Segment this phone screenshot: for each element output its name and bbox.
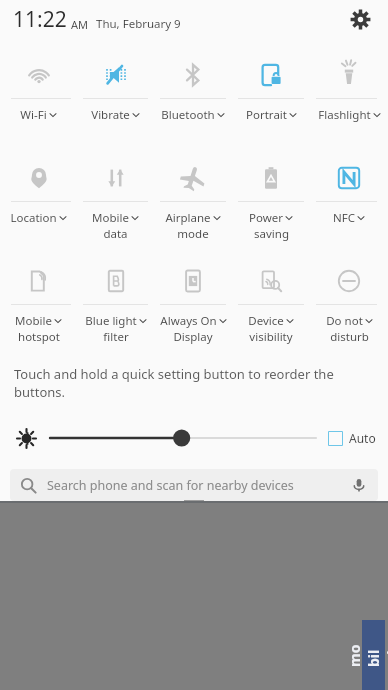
staticText: Thu, February 9 xyxy=(96,16,181,32)
staticText: Bluetooth xyxy=(161,107,215,123)
staticText: filter xyxy=(103,329,129,345)
staticText: Auto xyxy=(349,430,376,446)
staticText: Mobile xyxy=(15,313,52,329)
staticText: Blue light xyxy=(85,313,137,329)
staticText: Portrait xyxy=(246,107,287,123)
button[interactable]: Blue light xyxy=(77,250,154,353)
staticText: Mobile xyxy=(92,210,129,226)
button[interactable]: Power xyxy=(232,147,310,250)
staticText: Vibrate xyxy=(91,107,130,123)
button[interactable]: Mobile xyxy=(77,147,154,250)
other: Voice search xyxy=(350,476,368,494)
staticText: Location xyxy=(10,210,57,226)
button[interactable]: Location xyxy=(0,147,77,250)
button[interactable]: NFC xyxy=(310,147,388,250)
staticText: saving xyxy=(254,226,289,242)
staticText: Touch and hold a quick setting button to… xyxy=(14,365,388,401)
button[interactable]: Bluetooth xyxy=(154,44,232,147)
button[interactable] xyxy=(50,425,316,451)
staticText: mode xyxy=(177,226,209,242)
staticText: 11:22 xyxy=(13,5,67,34)
button[interactable]: Wi-Fi xyxy=(0,44,77,147)
staticText: data xyxy=(103,226,128,242)
staticText: Wi-Fi xyxy=(20,107,47,123)
staticText: Flashlight xyxy=(318,107,371,123)
staticText: Search phone and scan for nearby devices xyxy=(47,477,342,494)
button[interactable]: Flashlight xyxy=(310,44,388,147)
staticText: Always On xyxy=(160,313,217,329)
staticText: NFC xyxy=(333,210,355,226)
button[interactable]: Do not xyxy=(310,250,388,353)
button[interactable]: Vibrate xyxy=(77,44,154,147)
staticText: Power xyxy=(249,210,283,226)
button[interactable]: Airplane xyxy=(154,147,232,250)
staticText: mobile.ir xyxy=(345,644,388,667)
staticText: AM xyxy=(71,17,89,32)
staticText: visibility xyxy=(249,329,293,345)
other: Brightness xyxy=(14,426,38,450)
staticText: disturb xyxy=(330,329,369,345)
button[interactable]: Mobile xyxy=(0,250,77,353)
button[interactable]: Portrait xyxy=(232,44,310,147)
button[interactable]: Settings xyxy=(344,3,376,35)
staticText: Do not xyxy=(326,313,363,329)
button[interactable]: Always On xyxy=(154,250,232,353)
staticText: hotspot xyxy=(18,329,60,345)
button[interactable]: Auto xyxy=(328,430,376,446)
button[interactable]: Device xyxy=(232,250,310,353)
staticText: Display xyxy=(173,329,213,345)
button[interactable]: Search phone and scan for nearby devices xyxy=(10,469,378,501)
staticText: Device xyxy=(248,313,284,329)
staticText: Airplane xyxy=(165,210,211,226)
